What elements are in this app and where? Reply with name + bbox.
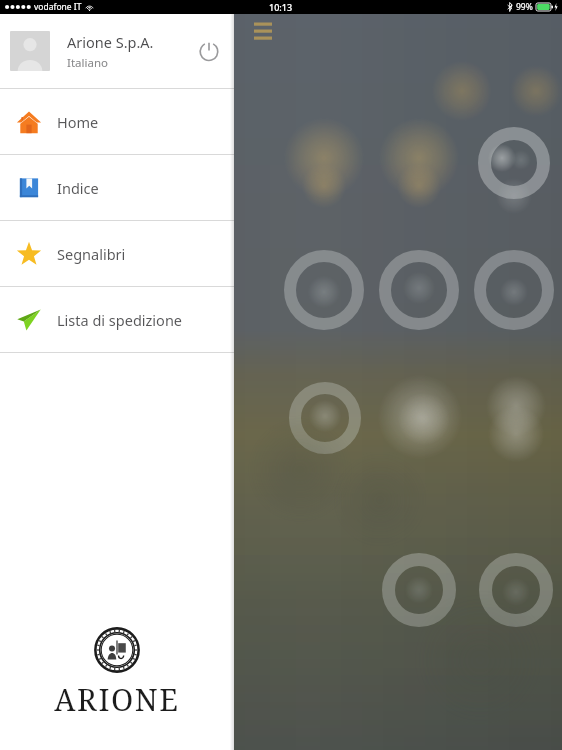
button[interactable]: Open navigation menu bbox=[245, 15, 281, 49]
button[interactable]: Home bbox=[0, 89, 234, 154]
button[interactable]: Lista di spedizione bbox=[0, 287, 234, 352]
staticText: ARIONE bbox=[54, 679, 180, 720]
button[interactable]: Segnalibri bbox=[0, 221, 234, 286]
button[interactable]: Logout bbox=[192, 34, 226, 68]
staticText: vodafone IT bbox=[34, 1, 82, 13]
staticText: Italiano bbox=[67, 55, 108, 71]
staticText: Indice bbox=[57, 178, 99, 198]
staticText: Home bbox=[57, 112, 99, 132]
button[interactable]: Arione S.p.A. bbox=[0, 14, 234, 88]
staticText: 10:13 bbox=[269, 1, 293, 13]
button[interactable]: Indice bbox=[0, 155, 234, 220]
staticText: 99% bbox=[516, 1, 533, 13]
staticText: Segnalibri bbox=[57, 244, 126, 264]
staticText: Lista di spedizione bbox=[57, 310, 183, 330]
staticText: Arione S.p.A. bbox=[67, 32, 154, 52]
